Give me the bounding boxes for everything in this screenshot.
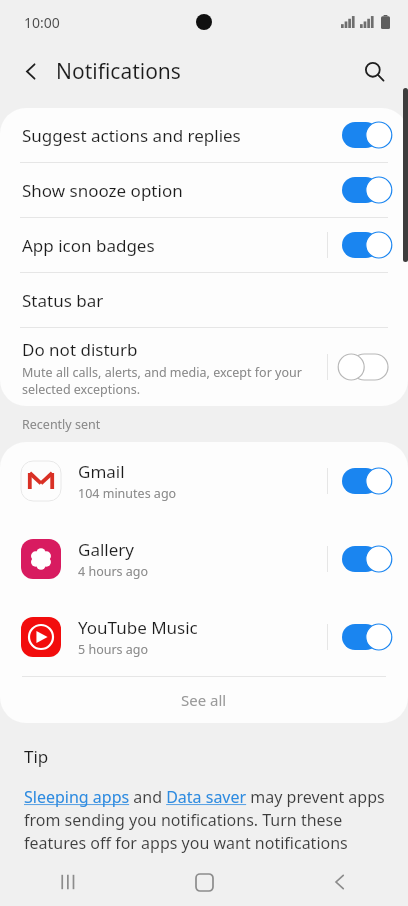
staticText: Sleeping apps and Data saver may prevent… [24,786,388,877]
staticText: Tip [24,745,49,768]
button[interactable]: On [342,468,388,494]
staticText: Show snooze option [22,179,342,202]
staticText: Mute all calls, alerts, and media, excep… [22,364,319,397]
staticText: 5 hours ago [78,641,149,658]
button[interactable]: Back [10,50,52,92]
button[interactable]: Show snooze option [0,163,408,217]
staticText: 4 hours ago [78,563,149,580]
button[interactable]: Off [342,354,388,380]
button[interactable]: Recent apps [0,858,136,906]
button[interactable]: See all [0,677,408,723]
staticText: Status bar [22,289,104,312]
button[interactable]: On [342,232,388,258]
staticText: See all [181,690,227,710]
staticText: App icon badges [22,234,327,257]
staticText: Do not disturb [22,338,138,361]
button[interactable]: Back [272,858,408,906]
button[interactable]: YouTube Music [0,598,408,676]
staticText: 104 minutes ago [78,485,177,502]
staticText: Suggest actions and replies [22,124,342,147]
staticText: 10:00 [24,13,60,32]
button[interactable]: On [342,624,388,650]
button[interactable]: Gallery [0,520,408,598]
button[interactable]: App icon badges [0,218,408,272]
button[interactable]: Suggest actions and replies [0,108,408,162]
button[interactable]: Search [352,49,396,93]
staticText: Notifications [56,57,181,86]
button[interactable]: On [342,177,388,203]
button[interactable]: Do not disturb [0,328,408,406]
staticText: Gallery [78,538,134,561]
staticText: YouTube Music [78,616,198,639]
button[interactable]: Home [136,858,272,906]
button[interactable]: Status bar [0,273,408,327]
button[interactable]: On [342,122,388,148]
staticText: Gmail [78,460,125,483]
button[interactable]: Gmail [0,442,408,520]
staticText: Recently sent [22,416,101,433]
button[interactable]: On [342,546,388,572]
